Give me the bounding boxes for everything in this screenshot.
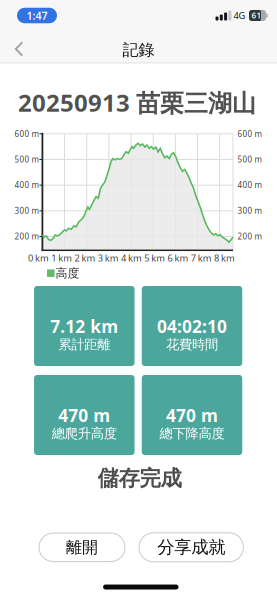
staticText: 7.12 km — [50, 315, 118, 338]
staticText: 400 m — [237, 180, 261, 190]
staticText: 470 m — [58, 404, 110, 427]
staticText: 61 — [251, 10, 261, 21]
staticText: 1 km — [51, 252, 72, 264]
staticText: 04:02:10 — [157, 315, 227, 338]
staticText: 300 m — [14, 205, 38, 216]
button[interactable] — [0, 0, 277, 600]
staticText: 儲存完成 — [97, 465, 181, 492]
staticText: 高度 — [55, 266, 79, 280]
staticText: 2 km — [74, 252, 95, 264]
staticText: 6 km — [167, 252, 188, 264]
staticText: 600 m — [14, 128, 38, 139]
staticText: 500 m — [237, 154, 261, 165]
staticText: 200 m — [237, 231, 261, 242]
staticText: 分享成就 — [157, 537, 225, 558]
staticText: 總下降高度 — [159, 425, 224, 442]
staticText: 離開 — [66, 537, 98, 557]
staticText: 400 m — [14, 180, 38, 190]
button[interactable]: 1:47 — [17, 8, 57, 23]
staticText: 記錄 — [122, 40, 154, 60]
staticText: 200 m — [14, 231, 38, 242]
staticText: 3 km — [98, 252, 119, 264]
staticText: 0 km — [28, 252, 49, 264]
staticText: 花費時間 — [166, 336, 218, 353]
button[interactable]: 分享成就 — [139, 533, 243, 562]
staticText: 4G — [233, 9, 245, 22]
staticText: 總爬升高度 — [52, 425, 117, 442]
staticText: 1:47 — [26, 8, 47, 23]
staticText: 500 m — [14, 154, 38, 165]
staticText: 7 km — [191, 252, 212, 264]
staticText: 20250913 苗栗三湖山 — [18, 87, 256, 118]
staticText: 470 m — [166, 404, 218, 427]
button[interactable]: 離開 — [39, 533, 125, 561]
staticText: 5 km — [144, 252, 165, 264]
staticText: 累計距離 — [58, 336, 110, 353]
staticText: 4 km — [121, 252, 142, 264]
staticText: 8 km — [214, 252, 235, 264]
staticText: 600 m — [237, 128, 261, 139]
staticText: 300 m — [237, 205, 261, 216]
